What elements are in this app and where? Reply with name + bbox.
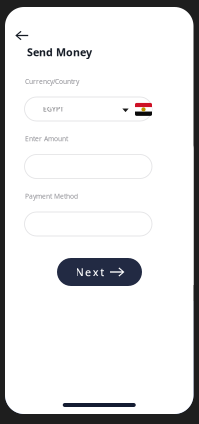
staticText: N bbox=[75, 265, 83, 279]
staticText: x bbox=[93, 265, 99, 279]
staticText: e bbox=[85, 265, 91, 279]
staticText: Enter Amount bbox=[25, 134, 68, 143]
staticText: EGYPT bbox=[43, 105, 64, 113]
button[interactable]: N bbox=[57, 258, 142, 286]
staticText: Send Money bbox=[27, 45, 92, 59]
staticText: Payment Method bbox=[25, 192, 78, 201]
button[interactable]: Back bbox=[9, 25, 35, 45]
staticText: t bbox=[100, 265, 104, 279]
staticText: Currency/Country bbox=[25, 77, 79, 86]
